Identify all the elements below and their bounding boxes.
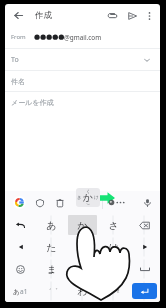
staticText: か xyxy=(83,191,94,204)
staticText: あ xyxy=(13,288,20,296)
button[interactable]: Backspace xyxy=(129,214,160,236)
button[interactable]: key xyxy=(36,236,67,258)
button[interactable]: Undo xyxy=(5,214,36,236)
staticText: あ xyxy=(46,219,57,232)
button[interactable]: Switch input mode xyxy=(5,280,36,302)
button[interactable]: key xyxy=(67,280,98,302)
staticText: To xyxy=(11,55,19,65)
staticText: ゛゜ xyxy=(45,287,58,295)
staticText: こ xyxy=(86,200,91,206)
staticText: な xyxy=(77,241,88,254)
button[interactable]: Send xyxy=(124,7,141,24)
button[interactable]: key xyxy=(36,258,67,280)
button[interactable]: key xyxy=(67,214,98,236)
staticText: は xyxy=(108,241,119,254)
staticText: From xyxy=(11,33,26,41)
staticText: わ xyxy=(77,285,88,298)
button[interactable]: key xyxy=(98,258,129,280)
button[interactable]: key xyxy=(67,236,98,258)
button[interactable]: Cursor left xyxy=(5,236,36,258)
button[interactable]: Cursor right xyxy=(129,236,160,258)
staticText: ま xyxy=(46,263,57,276)
button[interactable]: Stickers xyxy=(32,195,47,210)
button[interactable]: key xyxy=(36,280,67,302)
button[interactable]: key xyxy=(36,214,67,236)
button[interactable]: Clipboard xyxy=(52,195,67,210)
staticText: @gmail.com xyxy=(64,33,102,42)
staticText: 、。?! xyxy=(107,288,120,294)
button[interactable]: Expand recipients xyxy=(138,51,156,69)
button[interactable]: Back xyxy=(9,6,27,24)
button[interactable]: Attach file xyxy=(104,7,121,24)
button[interactable]: Space xyxy=(129,258,160,280)
button[interactable]: key xyxy=(98,236,129,258)
staticText: a1 xyxy=(20,287,28,296)
button[interactable]: key xyxy=(98,280,129,302)
staticText: か xyxy=(77,219,88,232)
staticText: 件名 xyxy=(11,77,25,86)
staticText: く xyxy=(86,189,91,195)
staticText: き xyxy=(77,195,82,201)
staticText: さ xyxy=(108,219,119,232)
staticText: メールを作成 xyxy=(11,98,54,107)
button[interactable]: Emoji xyxy=(5,258,36,280)
button[interactable]: Voice input xyxy=(140,195,155,210)
button[interactable]: Enter xyxy=(129,280,160,302)
button[interactable]: key xyxy=(67,258,98,280)
button[interactable]: More options xyxy=(142,8,157,23)
staticText: や xyxy=(77,263,88,276)
staticText: け xyxy=(94,195,99,201)
button[interactable]: key xyxy=(98,214,129,236)
button[interactable]: More keyboard options xyxy=(113,195,128,210)
staticText: 作成 xyxy=(35,10,52,21)
staticText: た xyxy=(46,241,57,254)
button[interactable]: Google search xyxy=(12,195,27,210)
